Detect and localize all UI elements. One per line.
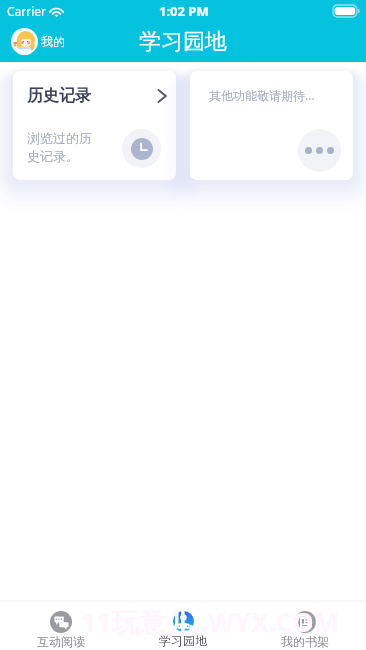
other: 我的书架 <box>294 611 316 633</box>
staticText: 我的 <box>41 34 65 49</box>
staticText: 互动阅读 <box>37 634 85 649</box>
staticText: 11玩意儿..WYX.COM <box>81 603 340 640</box>
other: 我的 <box>11 28 38 55</box>
staticText: 学习园地 <box>159 633 207 648</box>
button[interactable]: 我的 <box>0 21 75 62</box>
staticText: 浏览过的历史记录。 <box>27 130 95 165</box>
staticText: Carrier <box>7 3 47 19</box>
staticText: 其他功能敬请期待... <box>209 87 315 103</box>
other: 学习园地 <box>173 611 194 632</box>
other: 互动阅读 <box>50 611 72 633</box>
button[interactable]: 历史记录 <box>13 71 176 180</box>
button[interactable]: 互动阅读 <box>0 602 122 650</box>
staticText: 学习园地 <box>139 28 227 56</box>
staticText: 1:02 PM <box>159 2 209 20</box>
button[interactable]: 学习园地 <box>122 602 244 650</box>
button[interactable]: 我的书架 <box>244 602 366 650</box>
staticText: 历史记录 <box>27 86 91 106</box>
staticText: 我的书架 <box>281 634 329 649</box>
button[interactable]: 其他功能敬请期待... <box>190 71 353 180</box>
